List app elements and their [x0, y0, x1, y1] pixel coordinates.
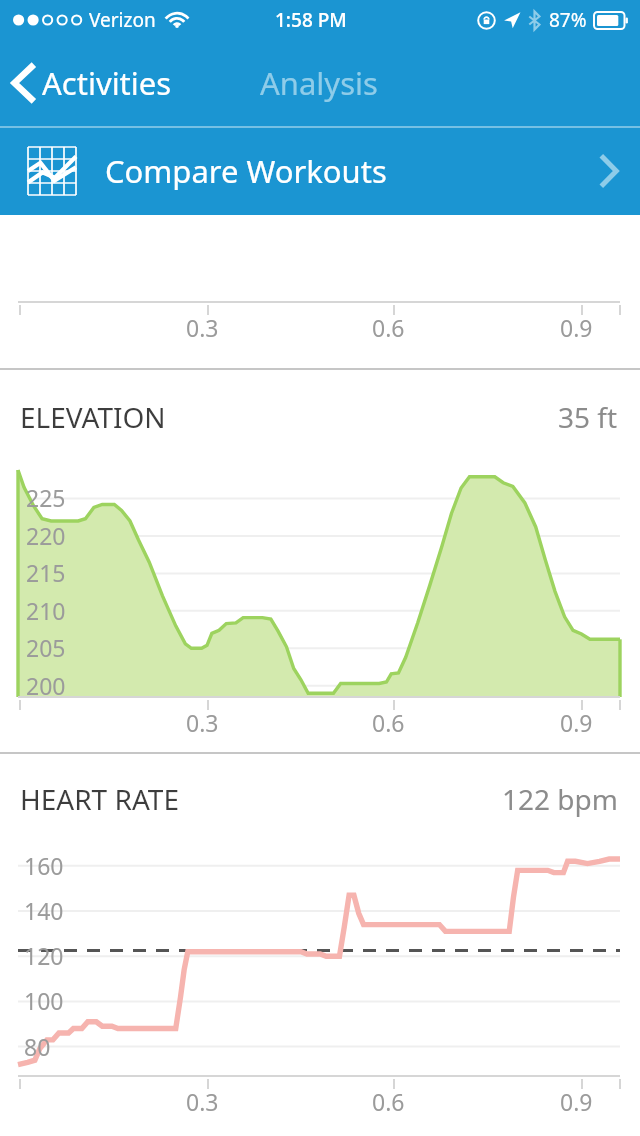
staticText: 87% — [549, 7, 587, 33]
staticText: 0.3 — [186, 1086, 219, 1117]
staticText: HEART RATE — [20, 780, 179, 818]
staticText: 0.9 — [560, 707, 593, 738]
staticText: 80 — [24, 1031, 51, 1062]
staticText: 210 — [26, 595, 66, 626]
staticText: ELEVATION — [20, 398, 166, 436]
staticText: 0.6 — [372, 1086, 405, 1117]
staticText: 35 ft — [558, 398, 618, 436]
staticText: Activities — [42, 62, 172, 104]
staticText: 215 — [26, 557, 66, 588]
staticText: 122 bpm — [502, 780, 618, 818]
staticText: 220 — [26, 520, 66, 551]
staticText: Verizon — [89, 7, 156, 33]
staticText: 0.9 — [560, 1086, 593, 1117]
staticText: 205 — [26, 632, 66, 663]
staticText: 0.3 — [186, 312, 219, 343]
staticText: Analysis — [260, 62, 378, 104]
staticText: 140 — [24, 895, 64, 926]
staticText: 225 — [26, 482, 66, 513]
staticText: 0.3 — [186, 707, 219, 738]
staticText: Compare Workouts — [105, 150, 387, 192]
staticText: 0.6 — [372, 312, 405, 343]
button[interactable]: Compare workouts — [0, 126, 640, 215]
staticText: 120 — [24, 940, 64, 971]
staticText: 200 — [26, 670, 66, 701]
staticText: 0.9 — [560, 312, 593, 343]
other: Compare workouts — [28, 147, 76, 195]
staticText: 100 — [24, 985, 64, 1016]
staticText: 0.6 — [372, 707, 405, 738]
staticText: 160 — [24, 850, 64, 881]
staticText: 1:58 PM — [275, 7, 347, 33]
button[interactable]: Activities — [12, 62, 172, 104]
